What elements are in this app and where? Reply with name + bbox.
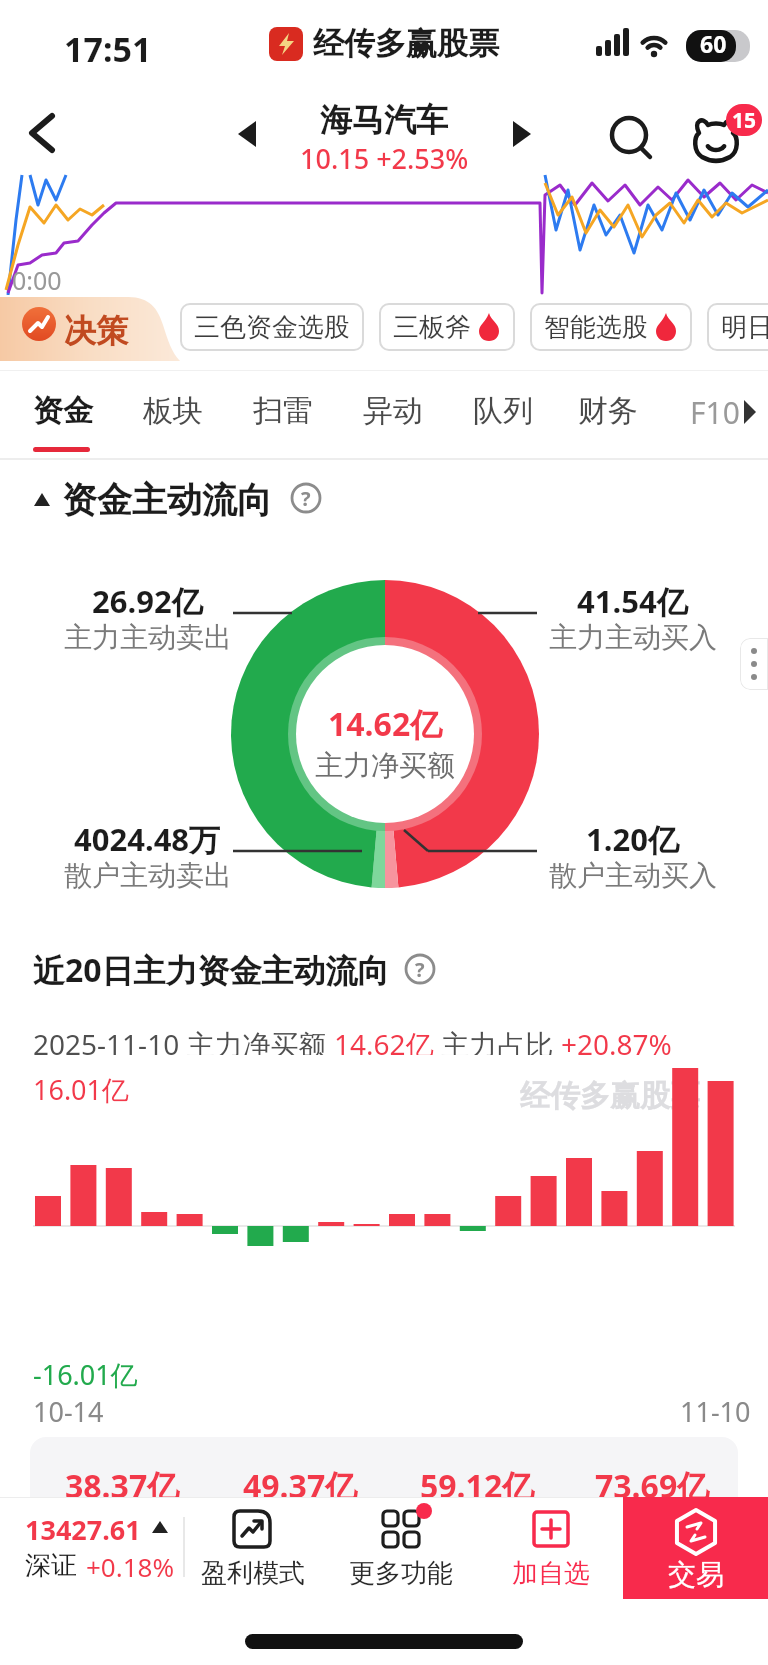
staticText: 10-14 (33, 1393, 104, 1430)
staticText: 17:51 (64, 26, 152, 72)
button[interactable]: 盈利模式 (196, 1497, 310, 1599)
staticText: 49.37亿 (243, 1464, 358, 1497)
staticText: 38.37亿 (65, 1464, 180, 1497)
staticText: F10 (690, 392, 740, 433)
staticText: 主力占比 (441, 1025, 561, 1063)
staticText: 0:00 (12, 263, 62, 297)
button[interactable]: 智能选股 (530, 303, 692, 351)
staticText: 散户主动卖出 (64, 858, 232, 893)
staticText: 海马汽车 (320, 100, 448, 140)
button[interactable]: F10 (680, 370, 760, 460)
staticText: 10.15 +2.53% (300, 140, 469, 177)
staticText: 60 (700, 28, 727, 59)
button[interactable]: 三板斧 (379, 303, 515, 351)
staticText: 14.62亿 (334, 1025, 441, 1063)
button[interactable] (604, 110, 658, 164)
staticText: 经传多赢股票 (520, 1077, 700, 1115)
button[interactable] (16, 100, 72, 164)
staticText: 2025-11-10 主力净买额 (33, 1025, 334, 1063)
staticText: 交易 (668, 1557, 724, 1592)
staticText: 三板斧 (393, 311, 471, 344)
button[interactable] (740, 638, 768, 690)
staticText: -16.01亿 (33, 1356, 138, 1393)
staticText: 决策 (64, 311, 128, 351)
staticText: 14.62亿 (328, 702, 443, 746)
staticText: 11-10 (680, 1393, 751, 1430)
staticText: 深证 (25, 1549, 77, 1582)
button[interactable]: 异动 (353, 370, 433, 460)
button[interactable]: 扫雷 (243, 370, 323, 460)
staticText: ? (301, 485, 311, 512)
staticText: 主力净买额 (315, 748, 455, 783)
staticText: 板块 (143, 392, 203, 430)
button[interactable]: 资金 (23, 370, 103, 460)
staticText: 16.01亿 (33, 1071, 130, 1108)
staticText: 财务 (578, 392, 638, 430)
staticText: 近20日主力资金主动流向 (33, 948, 390, 992)
button[interactable]: 板块 (133, 370, 213, 460)
staticText: 59.12亿 (420, 1464, 535, 1497)
staticText: 加自选 (512, 1557, 590, 1590)
staticText: 15 (732, 106, 757, 135)
button[interactable]: 队列 (463, 370, 543, 460)
staticText: 73.69亿 (595, 1464, 710, 1497)
staticText: 盈利模式 (201, 1557, 305, 1590)
button[interactable]: 15 (682, 104, 762, 168)
button[interactable]: 加自选 (494, 1497, 608, 1599)
staticText: 更多功能 (349, 1557, 453, 1590)
staticText: 主力主动卖出 (64, 620, 232, 655)
staticText: 1.20亿 (586, 818, 679, 860)
staticText: 智能选股 (544, 311, 648, 344)
staticText: 散户主动买入 (549, 858, 717, 893)
button[interactable]: 更多功能 (344, 1497, 458, 1599)
staticText: 主力主动买入 (549, 620, 717, 655)
button[interactable]: 财务 (568, 370, 648, 460)
button[interactable]: 交易 (623, 1497, 768, 1599)
staticText: 26.92亿 (92, 580, 203, 622)
staticText: 13427.61 (25, 1511, 141, 1548)
staticText: 扫雷 (253, 392, 313, 430)
staticText: 4024.48万 (74, 818, 221, 860)
button[interactable] (238, 121, 256, 147)
staticText: 资金 (33, 392, 93, 430)
button[interactable] (513, 121, 531, 147)
button[interactable]: 明日机会 (707, 303, 768, 351)
staticText: +20.87% (561, 1025, 672, 1063)
staticText: 经传多赢股票 (313, 24, 499, 63)
staticText: 队列 (473, 392, 533, 430)
button[interactable]: 三色资金选股 (180, 303, 364, 351)
staticText: 异动 (363, 392, 423, 430)
staticText: 三色资金选股 (194, 311, 350, 344)
staticText: +0.18% (86, 1549, 175, 1584)
staticText: 明日机会 (721, 311, 768, 344)
staticText: ? (415, 956, 425, 983)
staticText: 资金主动流向 (62, 478, 272, 522)
button[interactable]: 13427.61 (0, 1497, 183, 1599)
staticText: 41.54亿 (577, 580, 688, 622)
